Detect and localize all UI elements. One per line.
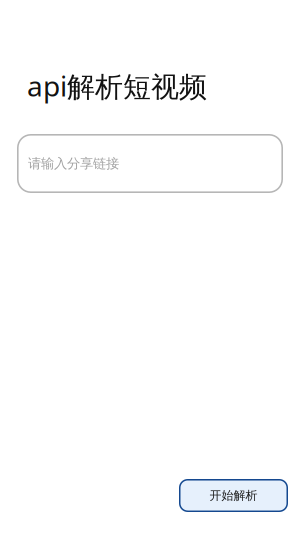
button[interactable]: 请输入分享链接 [17, 134, 283, 193]
button[interactable]: 开始解析 [179, 479, 288, 512]
staticText: 请输入分享链接 [28, 155, 119, 172]
staticText: api解析短视频 [27, 67, 207, 104]
staticText: 开始解析 [209, 488, 257, 503]
